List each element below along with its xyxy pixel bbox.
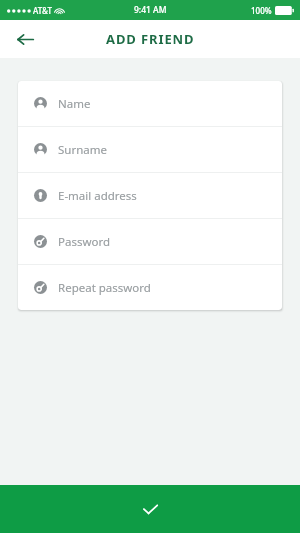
button[interactable]: Confirm [0,485,300,533]
staticText: Password [58,234,111,250]
button[interactable]: Password [18,219,282,264]
button[interactable]: Name [18,81,282,126]
button[interactable]: E-mail address [18,173,282,218]
button[interactable]: Repeat password [18,265,282,310]
staticText: Repeat password [58,280,151,296]
button[interactable]: Back [8,22,42,56]
button[interactable]: Surname [18,127,282,172]
staticText: Surname [58,142,107,158]
staticText: 100% [251,5,272,16]
staticText: E-mail address [58,188,137,204]
staticText: Name [58,96,91,112]
staticText: 9:41 AM [134,4,167,16]
staticText: AT&T [33,5,52,16]
staticText: ADD FRIEND [106,30,195,48]
